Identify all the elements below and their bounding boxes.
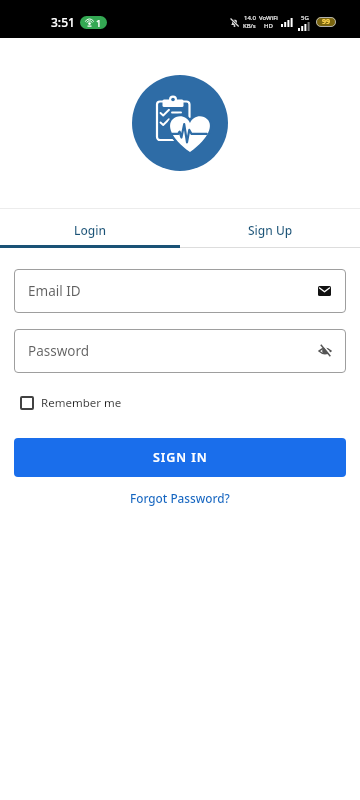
- staticText: VoWiFi: [259, 14, 278, 22]
- button[interactable]: Forgot Password?: [130, 490, 230, 506]
- button[interactable]: Login: [0, 209, 180, 239]
- staticText: Remember me: [41, 395, 122, 411]
- staticText: Email ID: [28, 282, 81, 300]
- staticText: 99: [322, 17, 331, 27]
- staticText: SIGN IN: [153, 449, 208, 466]
- staticText: Login: [74, 222, 106, 238]
- staticText: 3:51: [51, 14, 75, 30]
- button[interactable]: Remember me: [20, 395, 122, 411]
- staticText: 5G: [301, 14, 309, 22]
- staticText: HD: [264, 22, 273, 30]
- button[interactable]: SIGN IN: [14, 438, 346, 477]
- staticText: Sign Up: [248, 222, 293, 238]
- button[interactable]: Email ID: [14, 269, 346, 313]
- button[interactable]: Sign Up: [180, 209, 360, 239]
- staticText: Forgot Password?: [130, 490, 230, 506]
- staticText: 1: [96, 17, 102, 29]
- staticText: Password: [28, 342, 90, 360]
- staticText: 14.0: [244, 14, 256, 22]
- staticText: KB/s: [243, 22, 256, 30]
- button[interactable]: Password: [14, 329, 346, 373]
